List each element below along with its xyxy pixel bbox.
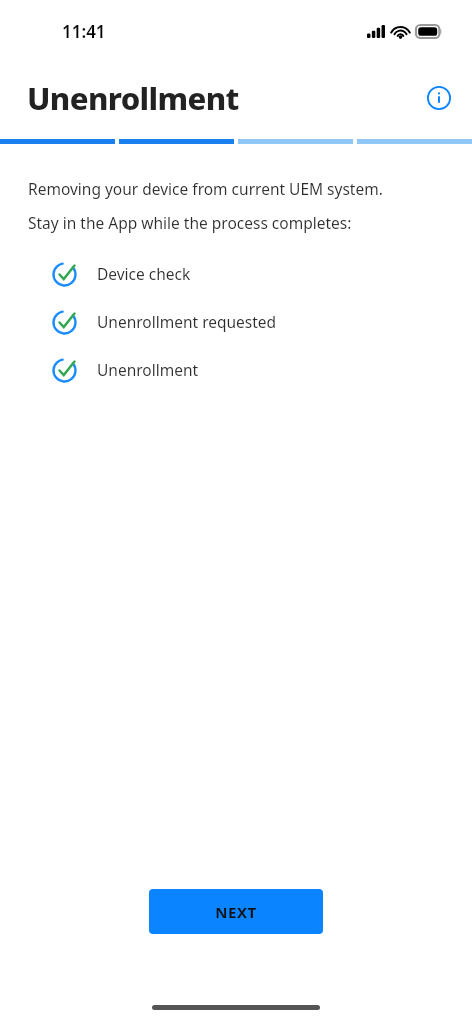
button[interactable]: Unenrollment <box>0 345 472 393</box>
button[interactable]: Unenrollment <box>27 77 239 119</box>
staticText: Unenrollment <box>27 77 239 119</box>
staticText: Device check <box>97 263 191 284</box>
button[interactable]: Unenrollment requested <box>0 297 472 345</box>
staticText: 11:41 <box>62 20 106 43</box>
staticText: Stay in the App while the process comple… <box>28 212 352 233</box>
button[interactable]: Information <box>422 81 456 115</box>
button[interactable]: Device check <box>0 249 472 297</box>
staticText: NEXT <box>215 902 257 922</box>
button[interactable]: NEXT <box>149 889 323 934</box>
staticText: Unenrollment requested <box>97 311 277 332</box>
staticText: Removing your device from current UEM sy… <box>28 178 383 199</box>
staticText: Unenrollment <box>97 359 199 380</box>
